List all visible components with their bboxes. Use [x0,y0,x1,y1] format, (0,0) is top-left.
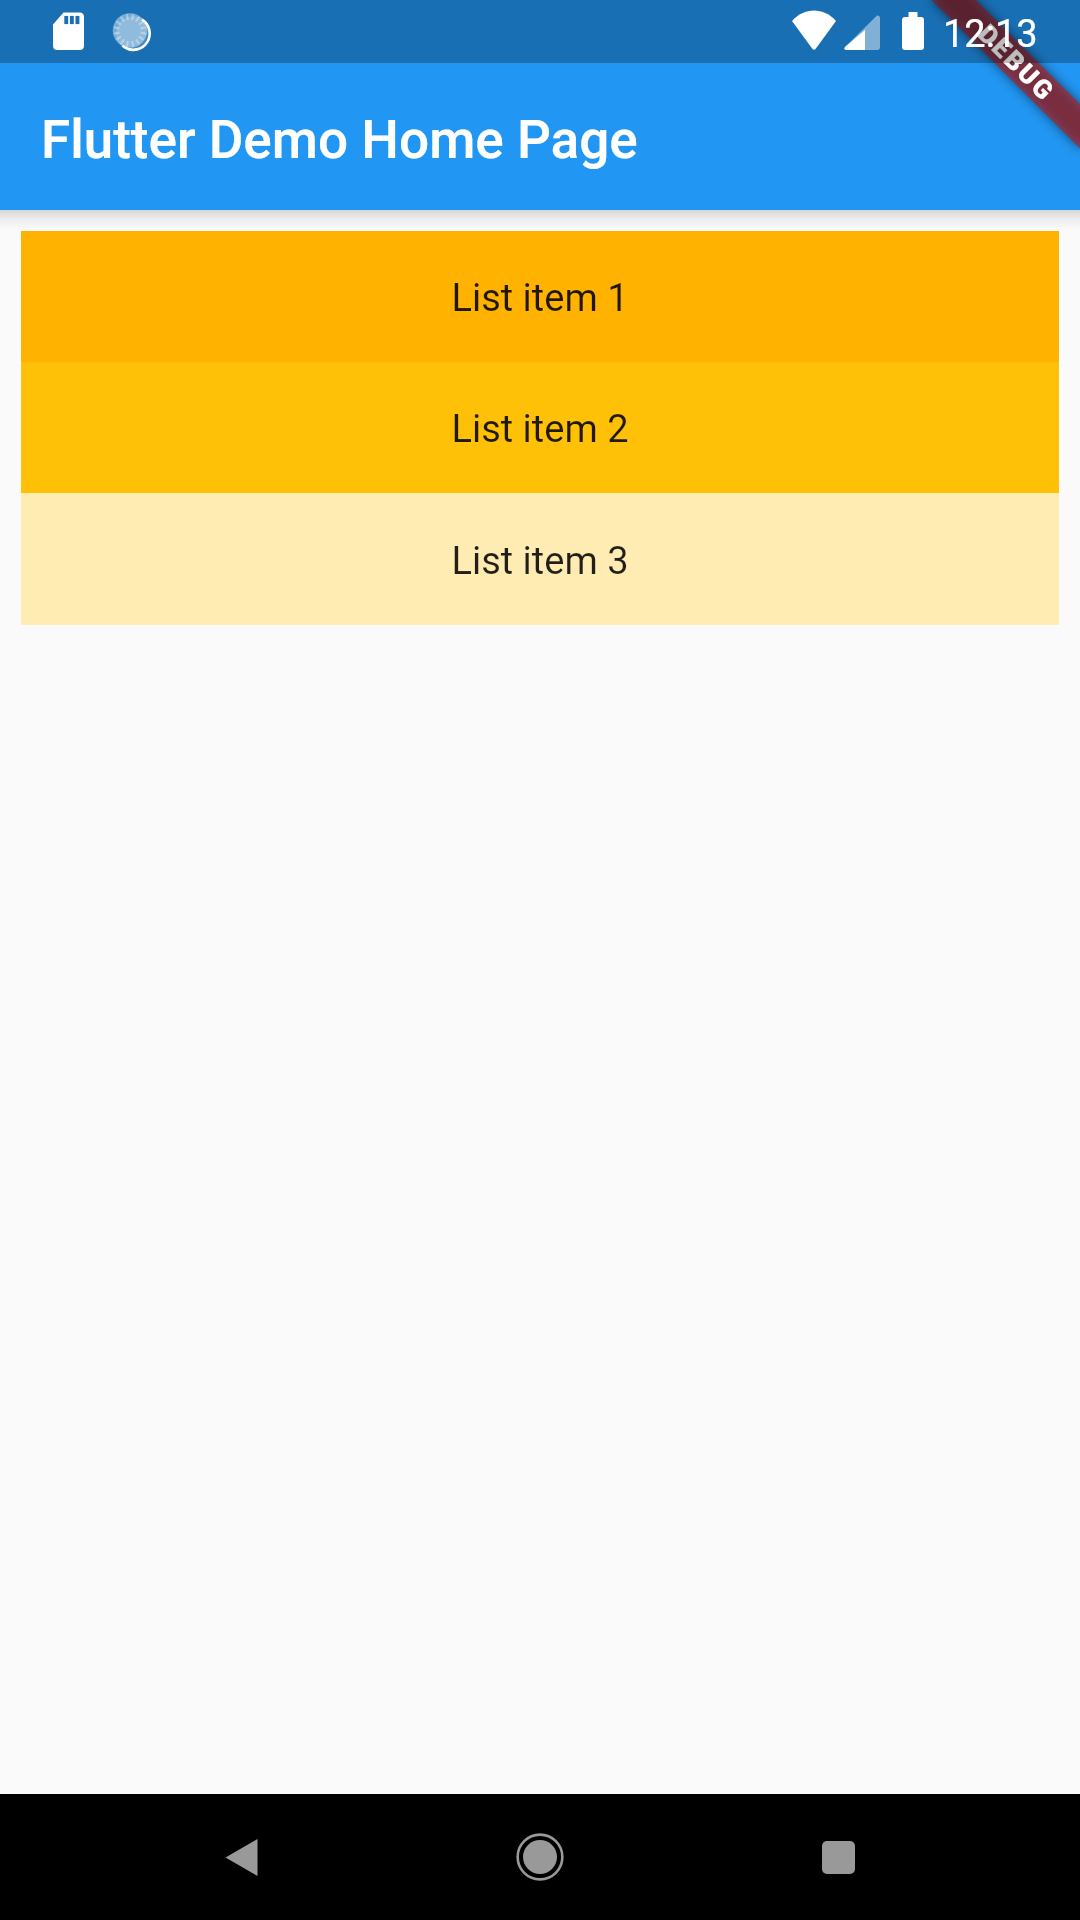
button[interactable]: Home [495,1812,585,1902]
button[interactable]: Recent apps [793,1812,883,1902]
staticText: List item 3 [451,539,629,584]
button[interactable]: List item 2 [21,362,1059,493]
button[interactable]: List item 3 [21,493,1059,625]
staticText: List item 2 [451,407,629,452]
staticText: List item 1 [451,276,629,321]
staticText: Flutter Demo Home Page [41,109,638,171]
button[interactable]: Back [197,1812,287,1902]
staticText: 12:13 [943,12,1038,57]
button[interactable]: List item 1 [21,231,1059,362]
